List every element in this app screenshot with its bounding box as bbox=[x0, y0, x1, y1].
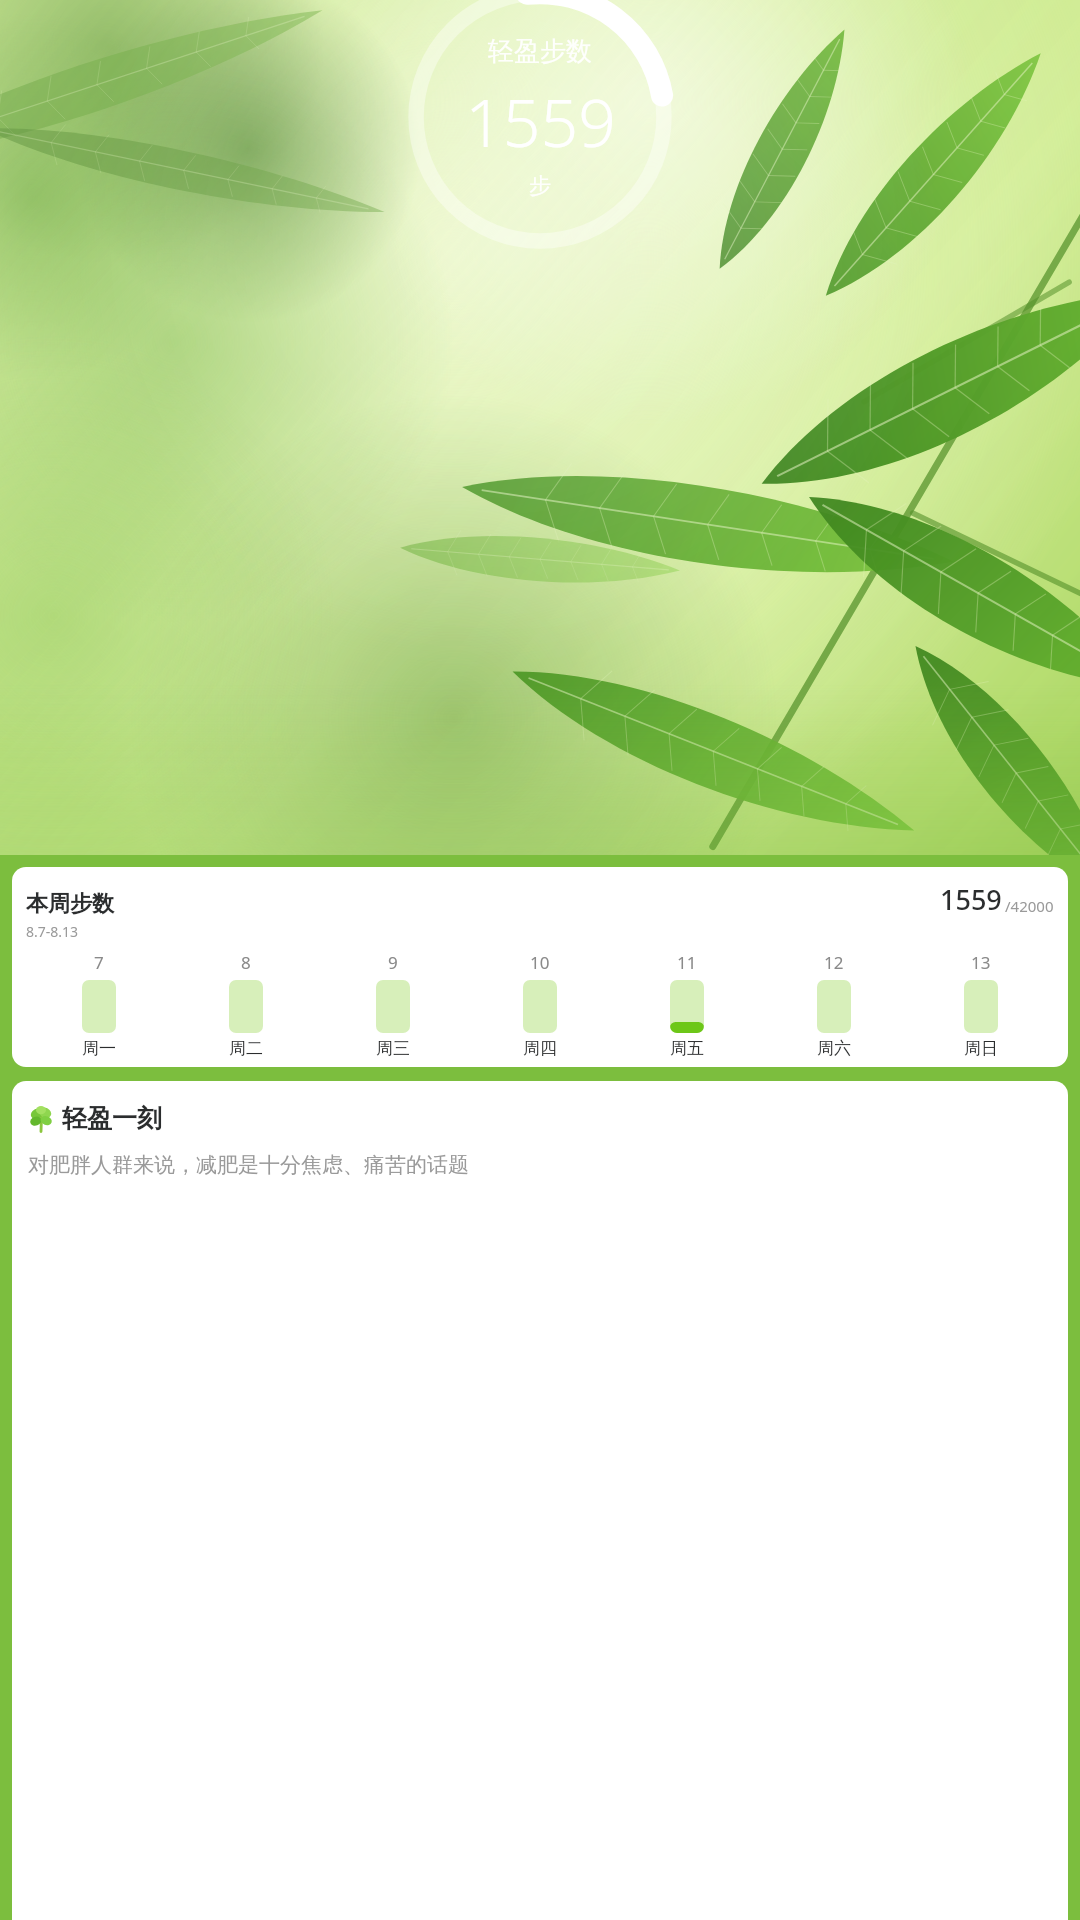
staticText: 1559 bbox=[940, 881, 1002, 918]
staticText: 对肥胖人群来说，减肥是十分焦虑、痛苦的话题 bbox=[28, 1152, 469, 1178]
staticText: 周五 bbox=[670, 1038, 704, 1059]
staticText: 12 bbox=[824, 951, 844, 974]
button[interactable]: 7 bbox=[26, 951, 172, 1059]
staticText: 8 bbox=[241, 951, 251, 974]
staticText: 13 bbox=[971, 951, 991, 974]
staticText: 8.7-8.13 bbox=[26, 922, 79, 941]
staticText: 周二 bbox=[229, 1038, 263, 1059]
staticText: 10 bbox=[530, 951, 550, 974]
button[interactable]: 9 bbox=[319, 951, 466, 1059]
staticText: 周三 bbox=[376, 1038, 410, 1059]
button[interactable]: 8 bbox=[172, 951, 319, 1059]
staticText: 步 bbox=[529, 172, 551, 200]
staticText: 11 bbox=[677, 951, 697, 974]
staticText: /42000 bbox=[1005, 896, 1054, 916]
staticText: 周一 bbox=[82, 1038, 116, 1059]
staticText: 周四 bbox=[523, 1038, 557, 1059]
button[interactable]: 本周步数 bbox=[12, 867, 1068, 1067]
button[interactable]: 12 bbox=[760, 951, 907, 1059]
button[interactable]: 轻盈一刻 bbox=[12, 1081, 1068, 1920]
staticText: 1559 bbox=[465, 76, 616, 166]
staticText: 轻盈步数 bbox=[488, 35, 592, 68]
button[interactable]: 10 bbox=[466, 951, 613, 1059]
staticText: 7 bbox=[94, 951, 104, 974]
staticText: 本周步数 bbox=[26, 890, 114, 918]
staticText: 9 bbox=[388, 951, 398, 974]
button[interactable]: 13 bbox=[907, 951, 1054, 1059]
staticText: 周六 bbox=[817, 1038, 851, 1059]
staticText: 周日 bbox=[964, 1038, 998, 1059]
staticText: 轻盈一刻 bbox=[62, 1103, 162, 1134]
button[interactable]: 11 bbox=[613, 951, 760, 1059]
